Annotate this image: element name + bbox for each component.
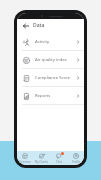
button[interactable]: Activity xyxy=(17,33,84,50)
button[interactable]: Compliance Score xyxy=(17,69,84,86)
button[interactable]: Overview xyxy=(17,151,33,165)
button[interactable]: Reports xyxy=(17,87,84,104)
staticText: Overview xyxy=(19,160,31,164)
staticText: My Checks xyxy=(35,160,48,164)
staticText: Reports xyxy=(35,93,51,99)
button[interactable]: Back xyxy=(21,21,30,30)
button[interactable]: Chat xyxy=(50,151,67,165)
staticText: Activity xyxy=(35,39,50,45)
staticText: Compliance Score xyxy=(35,75,71,81)
staticText: Chat xyxy=(56,160,62,164)
button[interactable]: My Checks xyxy=(33,151,50,165)
staticText: Air quality index xyxy=(35,57,67,63)
button[interactable]: Air quality index xyxy=(17,51,84,68)
staticText: Data xyxy=(33,22,45,29)
staticText: Profile xyxy=(72,160,80,164)
button[interactable]: Profile xyxy=(67,151,84,165)
